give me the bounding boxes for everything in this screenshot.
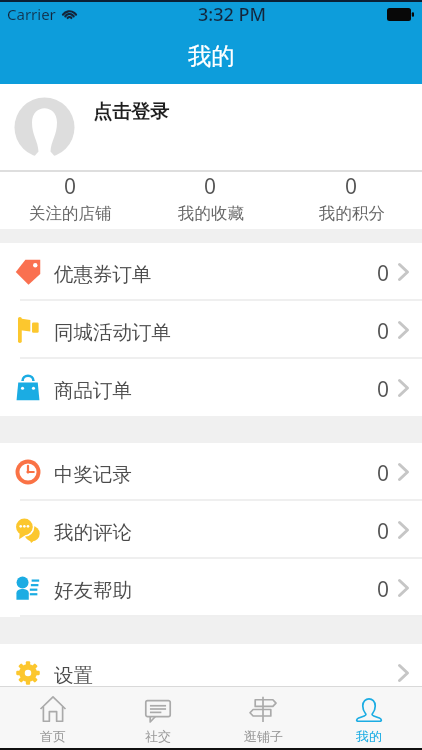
staticText: 点击登录 [93, 100, 169, 124]
staticText: 我的积分 [319, 203, 385, 224]
staticText: 优惠券订单 [54, 262, 152, 287]
staticText: 首页 [40, 728, 66, 744]
staticText: 关注的店铺 [29, 203, 112, 224]
button[interactable]: Mine [316, 687, 422, 748]
button[interactable]: 优惠券订单 [0, 243, 422, 301]
staticText: 逛铺子 [244, 728, 283, 744]
staticText: 好友帮助 [54, 578, 132, 603]
button[interactable]: 0 [281, 172, 422, 229]
button[interactable]: 好友帮助 [0, 559, 422, 617]
button[interactable]: 同城活动订单 [0, 301, 422, 359]
button[interactable]: Home [0, 687, 105, 748]
staticText: Carrier [7, 4, 56, 24]
staticText: 0 [377, 459, 390, 488]
staticText: 我的评论 [54, 520, 132, 545]
staticText: 0 [204, 172, 217, 201]
button[interactable]: 中奖记录 [0, 443, 422, 501]
staticText: 0 [377, 259, 390, 288]
button[interactable]: Shops [210, 687, 316, 748]
staticText: 社交 [145, 728, 171, 744]
staticText: 中奖记录 [54, 462, 132, 487]
staticText: 0 [64, 172, 77, 201]
staticText: 0 [377, 317, 390, 346]
button[interactable]: 设置 [0, 644, 422, 702]
staticText: 设置 [54, 663, 93, 688]
button[interactable]: 0 [0, 172, 140, 229]
staticText: 我的 [356, 728, 382, 744]
staticText: 我的 [188, 41, 235, 71]
staticText: 商品订单 [54, 378, 132, 403]
button[interactable]: Social [105, 687, 210, 748]
button[interactable]: 0 [140, 172, 281, 229]
button[interactable]: 商品订单 [0, 359, 422, 416]
staticText: 我的收藏 [178, 203, 244, 224]
staticText: 3:32 PM [198, 2, 266, 27]
staticText: 0 [377, 517, 390, 546]
staticText: 同城活动订单 [54, 320, 171, 345]
staticText: 0 [345, 172, 358, 201]
staticText: 0 [377, 375, 390, 404]
button[interactable]: 点击登录 [0, 84, 422, 170]
staticText: 0 [377, 575, 390, 604]
button[interactable]: 我的评论 [0, 501, 422, 559]
